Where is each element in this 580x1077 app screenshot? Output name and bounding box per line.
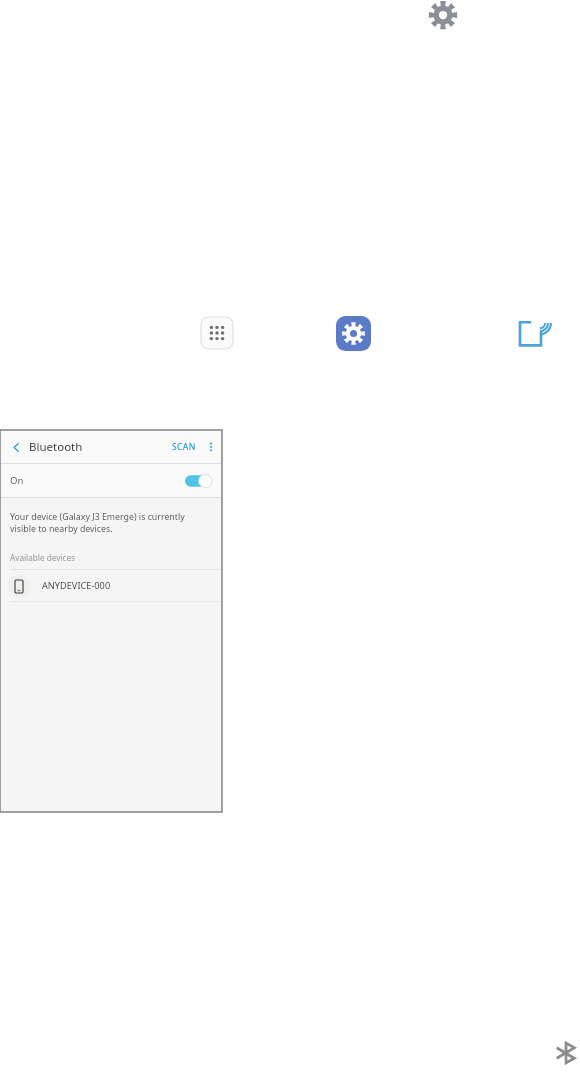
button[interactable]: SCAN [168, 433, 200, 461]
staticText: SCAN [172, 441, 196, 453]
staticText: Available devices [10, 552, 75, 563]
staticText: ANYDEVICE-000 [42, 579, 111, 592]
button[interactable]: More options [200, 430, 222, 463]
staticText: Bluetooth [29, 439, 83, 455]
button[interactable]: Settings [427, 0, 459, 32]
staticText: Your device (Galaxy J3 Emerge) is curren… [10, 511, 185, 523]
button[interactable]: Back [6, 437, 26, 457]
button[interactable]: Bluetooth [552, 1040, 578, 1066]
staticText: visible to nearby devices. [10, 523, 113, 535]
button[interactable]: Settings app [336, 316, 371, 351]
button[interactable]: Apps [200, 316, 234, 350]
staticText: On [10, 474, 24, 487]
button[interactable]: Android Beam [513, 316, 548, 351]
button[interactable]: ANYDEVICE-000 [0, 570, 222, 601]
button[interactable]: On [0, 464, 222, 497]
